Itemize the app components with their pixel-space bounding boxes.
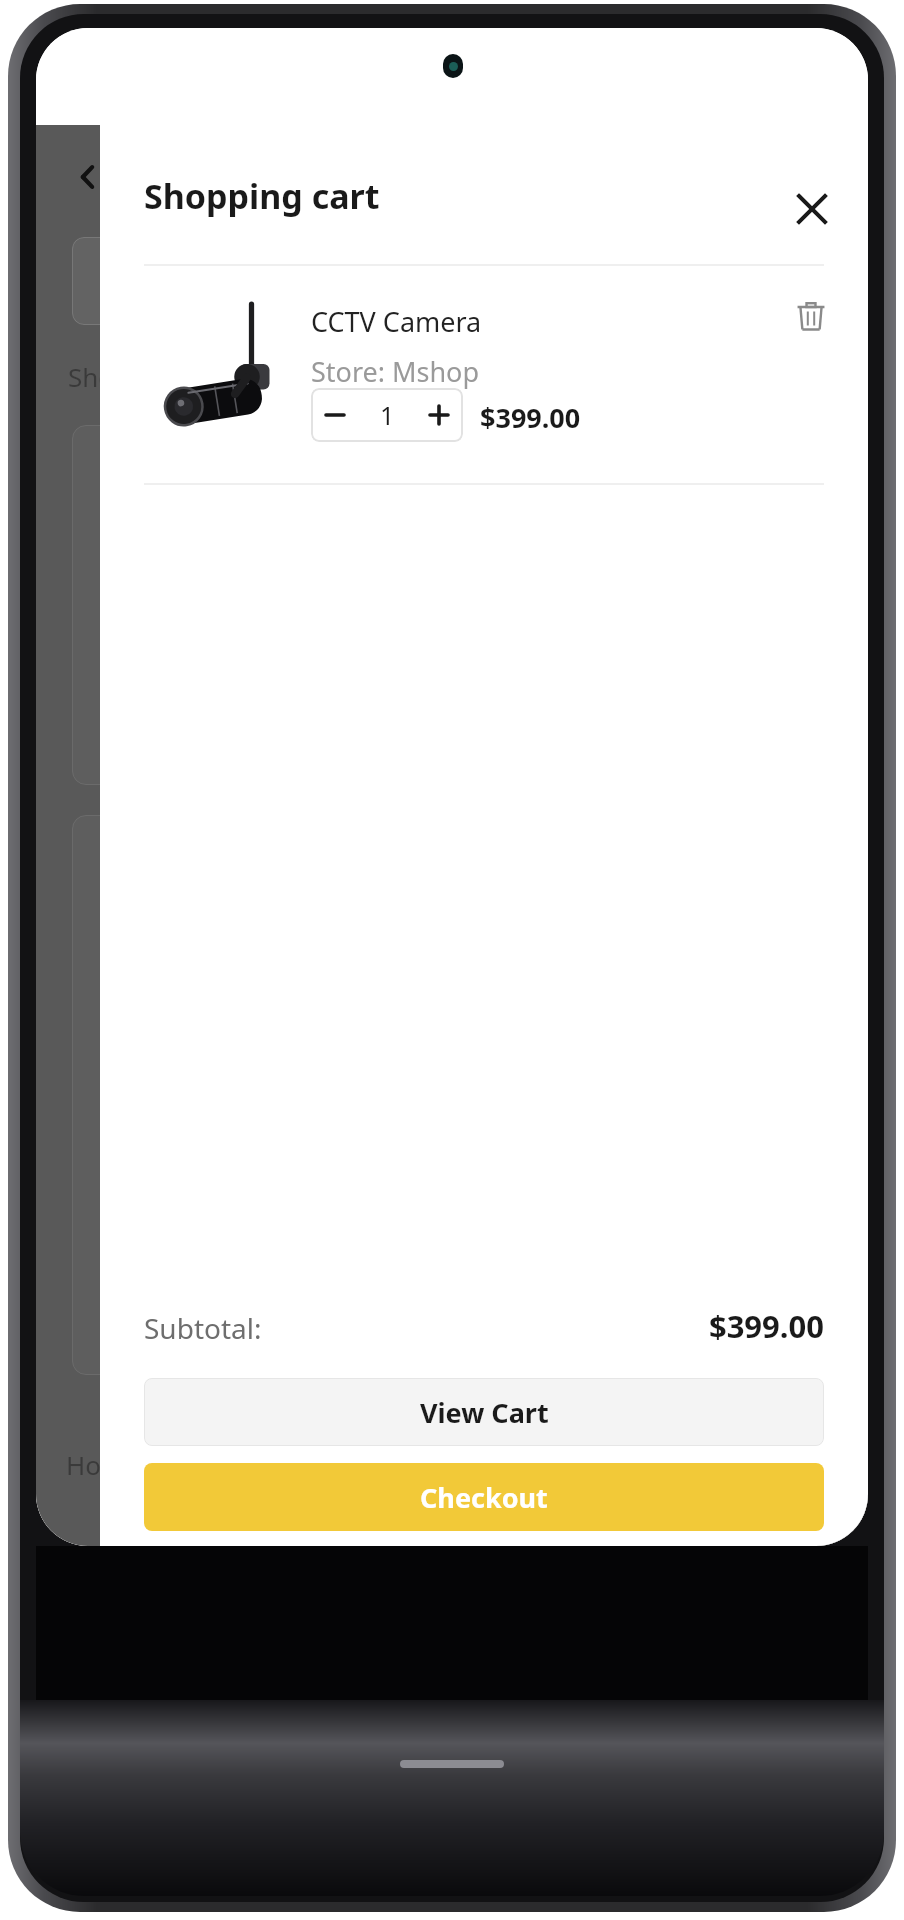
staticText: Shopping cart <box>144 173 380 219</box>
button[interactable]: Decrease quantity <box>311 388 359 442</box>
staticText: Checkout <box>420 1479 548 1516</box>
staticText: $399.00 <box>708 1305 824 1347</box>
button[interactable] <box>72 237 182 325</box>
button[interactable]: Back <box>60 149 116 205</box>
button[interactable]: View Cart <box>144 1378 824 1446</box>
staticText: Store: Mshop <box>311 353 480 390</box>
staticText: $399.00 <box>480 399 581 436</box>
staticText: Shop by category <box>68 359 280 394</box>
staticText: View Cart <box>420 1394 549 1431</box>
staticText: CCTV Camera <box>311 303 482 340</box>
button[interactable]: Increase quantity <box>415 388 463 442</box>
staticText: 1 <box>380 398 395 432</box>
button[interactable]: Remove item <box>782 287 840 345</box>
button[interactable]: Close <box>780 177 844 241</box>
button[interactable]: Checkout <box>144 1463 824 1531</box>
staticText: Subtotal: <box>144 1309 262 1347</box>
staticText: Hot deals <box>66 1447 182 1482</box>
